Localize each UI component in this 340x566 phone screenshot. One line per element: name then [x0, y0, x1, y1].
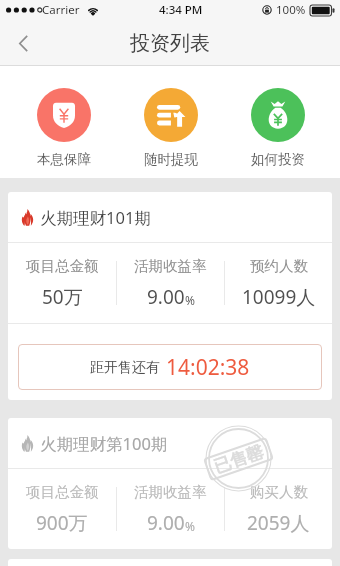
staticText: %	[185, 518, 195, 534]
staticText: 购买人数	[250, 483, 308, 501]
staticText: 火期理财第100期	[40, 432, 168, 455]
staticText: 活期收益率	[134, 483, 207, 501]
staticText: 随时提现	[144, 151, 198, 168]
staticText: 2059人	[247, 510, 310, 536]
button[interactable]: Back	[0, 20, 46, 66]
button[interactable]: 火期理财第100期	[8, 418, 332, 549]
staticText: 项目总金额	[26, 257, 99, 275]
staticText: 10099人	[242, 284, 316, 310]
button[interactable]: 本息保障	[27, 88, 101, 168]
staticText: 4:34 PM	[159, 2, 203, 18]
staticText: 900万	[36, 510, 88, 536]
staticText: 9.00	[147, 284, 185, 310]
staticText: 投资列表	[130, 31, 210, 56]
staticText: 活期收益率	[134, 257, 207, 275]
staticText: Carrier	[42, 2, 80, 18]
staticText: 9.00	[147, 510, 185, 536]
staticText: 如何投资	[251, 151, 305, 168]
staticText: 已售罄	[211, 441, 266, 478]
staticText: 100%	[276, 2, 306, 18]
staticText: 本息保障	[37, 151, 91, 168]
button[interactable]: 如何投资	[241, 88, 315, 168]
button[interactable]: 火期理财101期	[8, 192, 332, 400]
button[interactable]: 距开售还有	[18, 344, 322, 390]
staticText: 距开售还有	[90, 359, 160, 377]
staticText: 50万	[42, 284, 83, 310]
staticText: 火期理财101期	[40, 206, 151, 229]
staticText: 项目总金额	[26, 483, 99, 501]
button[interactable]: 随时提现	[134, 88, 208, 168]
staticText: 预约人数	[250, 257, 308, 275]
staticText: 14:02:38	[166, 353, 250, 382]
staticText: %	[185, 292, 195, 308]
